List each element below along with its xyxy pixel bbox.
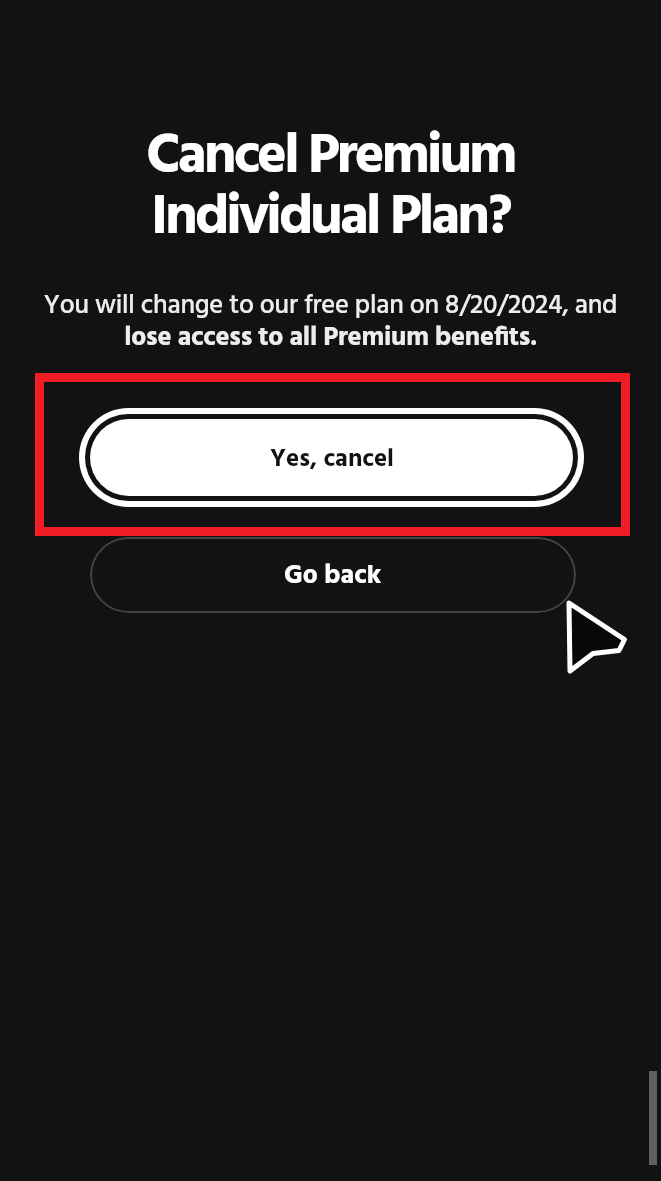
button[interactable]: Yes, cancel — [90, 419, 573, 496]
staticText: Go back — [284, 555, 382, 597]
staticText: Yes, cancel — [270, 440, 394, 480]
other: Pointer — [558, 598, 636, 680]
button[interactable]: Go back — [90, 537, 576, 613]
staticText: Cancel Premium Individual Plan? — [0, 113, 661, 264]
staticText: You will change to our free plan on 8/20… — [28, 285, 633, 360]
